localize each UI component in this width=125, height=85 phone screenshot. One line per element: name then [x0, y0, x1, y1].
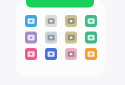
button[interactable]: Wallet [85, 31, 97, 43]
button[interactable]: Documents [65, 31, 77, 43]
button[interactable]: Frames [45, 15, 57, 27]
button[interactable]: Documents [65, 15, 77, 27]
button[interactable]: Photos [25, 48, 37, 60]
button[interactable]: Wallet [85, 15, 97, 27]
button[interactable]: Gallery [65, 48, 77, 60]
button[interactable]: Frames [45, 31, 57, 43]
button[interactable]: Videos [25, 15, 37, 27]
button[interactable]: Books [85, 48, 97, 60]
button[interactable]: Files [45, 48, 57, 60]
button[interactable]: Camera [25, 31, 37, 43]
